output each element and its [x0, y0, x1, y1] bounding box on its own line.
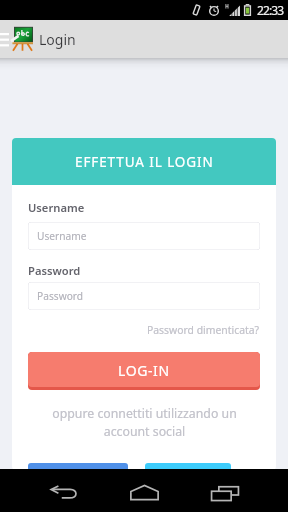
- staticText: EFFETTUA IL LOGIN: [75, 153, 214, 171]
- button[interactable]: Back: [36, 469, 92, 512]
- button[interactable]: LOG-IN: [28, 352, 260, 390]
- button[interactable]: Password: [28, 282, 260, 310]
- staticText: Password: [37, 289, 84, 303]
- staticText: Password: [28, 263, 81, 278]
- staticText: Password dimenticata?: [147, 323, 260, 337]
- staticText: Login: [39, 30, 76, 49]
- staticText: Username: [28, 200, 85, 215]
- staticText: LOG-IN: [118, 361, 170, 380]
- button[interactable]: Password dimenticata?: [147, 323, 260, 337]
- button[interactable]: Recent apps: [197, 469, 253, 512]
- staticText: Username: [37, 229, 87, 243]
- button[interactable]: Username: [28, 222, 260, 250]
- staticText: 22:33: [257, 2, 284, 18]
- button[interactable]: Login with Twitter: [145, 463, 231, 470]
- button[interactable]: Home: [116, 469, 172, 512]
- button[interactable]: Navigation menu: [0, 20, 36, 58]
- button[interactable]: Login with Facebook: [28, 463, 128, 470]
- staticText: oppure connettiti utilizzando un account…: [52, 405, 237, 440]
